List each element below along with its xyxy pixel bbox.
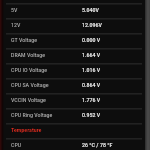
staticText: CPU IO Voltage bbox=[11, 66, 47, 73]
staticText: 12.096V bbox=[82, 21, 102, 28]
button[interactable]: 12V bbox=[0, 18, 150, 33]
staticText: DRAM Voltage bbox=[11, 51, 46, 58]
staticText: 0.952 V bbox=[82, 111, 101, 118]
staticText: GT Voltage bbox=[11, 36, 37, 43]
staticText: 0.000 V bbox=[82, 36, 101, 43]
button[interactable]: 5V bbox=[0, 3, 150, 18]
staticText: 1.664 V bbox=[82, 51, 101, 58]
staticText: CPU bbox=[11, 141, 22, 148]
staticText: CPU SA Voltage bbox=[11, 81, 49, 88]
button[interactable]: CPU bbox=[0, 138, 150, 150]
button[interactable]: VCCIN Voltage bbox=[0, 93, 150, 108]
staticText: VCCIN Voltage bbox=[11, 96, 46, 103]
button[interactable]: GT Voltage bbox=[0, 33, 150, 48]
button[interactable]: DRAM Voltage bbox=[0, 48, 150, 63]
staticText: Temperature bbox=[11, 126, 42, 133]
button[interactable]: CPU Ring Voltage bbox=[0, 108, 150, 123]
button[interactable]: CPU IO Voltage bbox=[0, 63, 150, 78]
button[interactable]: CPU SA Voltage bbox=[0, 78, 150, 93]
button[interactable]: Temperature bbox=[0, 123, 150, 138]
staticText: 1.016 V bbox=[82, 66, 101, 73]
staticText: 0.864 V bbox=[82, 81, 101, 88]
staticText: 26 °C / 78 °F bbox=[82, 141, 113, 148]
staticText: 1.776 V bbox=[82, 96, 101, 103]
staticText: CPU Ring Voltage bbox=[11, 111, 53, 118]
staticText: 12V bbox=[11, 21, 21, 28]
staticText: 5V bbox=[11, 6, 18, 13]
staticText: 5.040V bbox=[82, 6, 99, 13]
